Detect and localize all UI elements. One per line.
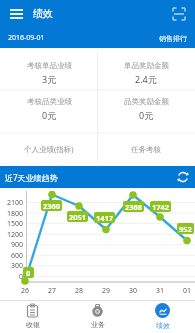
staticText: 2.4元 — [135, 73, 157, 85]
staticText: 2100 — [7, 198, 24, 207]
staticText: 品类奖励金额 — [124, 97, 169, 106]
staticText: 收银 — [26, 320, 40, 329]
staticText: 1742 — [152, 202, 170, 212]
staticText: 2360 — [43, 201, 61, 211]
button[interactable] — [176, 170, 190, 184]
staticText: 2051 — [69, 212, 87, 222]
staticText: 0 — [19, 272, 24, 281]
staticText: 300 — [11, 261, 24, 270]
staticText: 绩效 — [33, 7, 53, 20]
staticText: 考核单品业绩 — [27, 61, 72, 70]
button[interactable] — [6, 5, 26, 23]
staticText: 0元 — [139, 109, 154, 121]
staticText: 1800 — [7, 209, 24, 218]
staticText: 31 — [156, 286, 165, 296]
staticText: 单品奖励金额 — [124, 61, 169, 70]
staticText: 3元 — [42, 73, 57, 85]
staticText: 2368 — [125, 202, 143, 212]
staticText: 1500 — [7, 219, 24, 228]
button[interactable]: 销售排行 — [159, 34, 187, 43]
staticText: 0元 — [42, 109, 57, 121]
staticText: 0 — [26, 268, 31, 278]
staticText: 绩效 — [156, 321, 170, 330]
staticText: 销售排行 — [159, 34, 187, 43]
staticText: 1417 — [96, 213, 114, 223]
staticText: 业务 — [91, 320, 105, 329]
staticText: 952 — [179, 224, 192, 234]
staticText: 1200 — [7, 230, 24, 239]
staticText: 近7天业绩趋势 — [5, 172, 58, 183]
button[interactable]: 收银 — [0, 301, 65, 333]
staticText: 28 — [75, 286, 84, 296]
button[interactable] — [168, 4, 190, 24]
staticText: 29 — [102, 286, 111, 296]
staticText: 600 — [11, 251, 24, 260]
staticText: 01 — [183, 286, 192, 296]
staticText: 30 — [129, 286, 138, 296]
button[interactable]: 业务 — [65, 301, 130, 333]
staticText: 个人业绩(指标) — [24, 144, 74, 154]
staticText: 2016-09-01 — [8, 33, 45, 43]
button[interactable]: 绩效 — [130, 301, 195, 333]
staticText: 考核品类业绩 — [27, 97, 72, 106]
staticText: 26 — [21, 286, 30, 296]
staticText: 27 — [48, 286, 57, 296]
staticText: 任务考核 — [131, 145, 161, 154]
staticText: 900 — [11, 240, 24, 249]
